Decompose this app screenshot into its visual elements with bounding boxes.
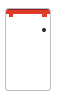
button[interactable]	[6, 10, 50, 14]
button[interactable]: Action	[42, 28, 46, 32]
